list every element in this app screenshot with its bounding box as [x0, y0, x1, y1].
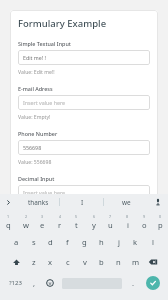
- staticText: w: [23, 220, 29, 230]
- staticText: t: [75, 220, 78, 230]
- button[interactable]: 5: [68, 212, 85, 232]
- button[interactable]: Emoji: [42, 273, 58, 293]
- button[interactable]: Enter: [141, 273, 165, 293]
- staticText: Phone Number: [18, 130, 58, 137]
- staticText: 4: [59, 214, 62, 219]
- button[interactable]: c: [59, 252, 76, 272]
- button[interactable]: x: [42, 252, 59, 272]
- staticText: 5: [75, 214, 78, 219]
- staticText: Decimal Input: [18, 175, 55, 182]
- staticText: Formulary Example: [18, 17, 107, 30]
- staticText: 8: [126, 214, 129, 219]
- staticText: a: [14, 237, 19, 247]
- button[interactable]: Edit me! !: [18, 50, 150, 65]
- staticText: i: [127, 220, 129, 230]
- staticText: p: [158, 220, 163, 230]
- button[interactable]: 8: [119, 212, 136, 232]
- button[interactable]: Backspace: [144, 252, 162, 272]
- staticText: g: [82, 237, 87, 247]
- staticText: m: [132, 257, 140, 267]
- button[interactable]: n: [110, 252, 127, 272]
- staticText: x: [48, 257, 53, 267]
- button[interactable]: g: [76, 232, 93, 252]
- button[interactable]: b: [93, 252, 110, 272]
- button[interactable]: 4: [51, 212, 68, 232]
- staticText: 2: [25, 214, 28, 219]
- staticText: Insert value here: [23, 189, 66, 196]
- staticText: c: [66, 257, 70, 267]
- button[interactable]: a: [8, 232, 25, 252]
- button[interactable]: ,: [27, 273, 42, 293]
- staticText: n: [116, 257, 121, 267]
- staticText: we: [122, 198, 131, 207]
- staticText: 9: [143, 214, 146, 219]
- button[interactable]: l: [144, 232, 161, 252]
- staticText: 7: [109, 214, 112, 219]
- button[interactable]: 6: [85, 212, 102, 232]
- staticText: u: [108, 220, 113, 230]
- button[interactable]: I: [60, 194, 104, 210]
- staticText: o: [142, 220, 147, 230]
- button[interactable]: m: [127, 252, 144, 272]
- button[interactable]: Insert value here: [18, 95, 150, 110]
- staticText: d: [48, 237, 53, 247]
- button[interactable]: we: [104, 194, 148, 210]
- staticText: I: [81, 198, 84, 207]
- staticText: Value: Edit me!!: [18, 69, 55, 76]
- staticText: k: [133, 237, 138, 247]
- staticText: 6: [93, 214, 96, 219]
- staticText: Value: 556698: [18, 159, 52, 166]
- button[interactable]: d: [42, 232, 59, 252]
- staticText: r: [58, 220, 62, 230]
- button[interactable]: 7: [102, 212, 119, 232]
- staticText: s: [32, 237, 36, 247]
- staticText: h: [99, 237, 104, 247]
- button[interactable]: s: [25, 232, 42, 252]
- staticText: Value: Empty!: [18, 114, 51, 121]
- staticText: f: [66, 237, 69, 247]
- button[interactable]: 0: [153, 212, 168, 232]
- button[interactable]: 556698: [18, 140, 150, 155]
- button[interactable]: 2: [17, 212, 34, 232]
- button[interactable]: h: [93, 232, 110, 252]
- button[interactable]: 1: [0, 212, 17, 232]
- staticText: Edit me! !: [23, 54, 47, 61]
- staticText: Insert value here: [23, 99, 66, 106]
- button[interactable]: Voice input: [148, 194, 168, 210]
- staticText: E-mail Adress: [18, 85, 53, 92]
- button[interactable]: 3: [34, 212, 51, 232]
- button[interactable]: v: [76, 252, 93, 272]
- button[interactable]: f: [59, 232, 76, 252]
- button[interactable]: j: [110, 232, 127, 252]
- staticText: ?123: [9, 279, 22, 287]
- button[interactable]: thanks: [16, 194, 60, 210]
- staticText: ,: [33, 278, 36, 288]
- button[interactable]: Shift: [7, 252, 25, 272]
- staticText: q: [6, 220, 11, 230]
- staticText: y: [92, 220, 96, 230]
- button[interactable]: Insert value here: [18, 185, 150, 200]
- staticText: 1: [7, 214, 10, 219]
- staticText: 556698: [23, 144, 42, 151]
- staticText: v: [83, 257, 87, 267]
- staticText: Simple Textual Input: [18, 40, 71, 47]
- button[interactable]: z: [25, 252, 42, 272]
- staticText: 0: [159, 214, 162, 219]
- staticText: l: [152, 237, 154, 247]
- button[interactable]: ?123: [3, 273, 27, 293]
- button[interactable]: More suggestions: [0, 194, 16, 210]
- staticText: j: [118, 237, 120, 247]
- staticText: .: [132, 278, 135, 288]
- staticText: b: [99, 257, 104, 267]
- staticText: e: [40, 220, 45, 230]
- staticText: 3: [41, 214, 44, 219]
- staticText: z: [32, 257, 36, 267]
- button[interactable]: .: [126, 273, 141, 293]
- button[interactable]: 9: [136, 212, 153, 232]
- staticText: thanks: [28, 198, 49, 207]
- button[interactable]: k: [127, 232, 144, 252]
